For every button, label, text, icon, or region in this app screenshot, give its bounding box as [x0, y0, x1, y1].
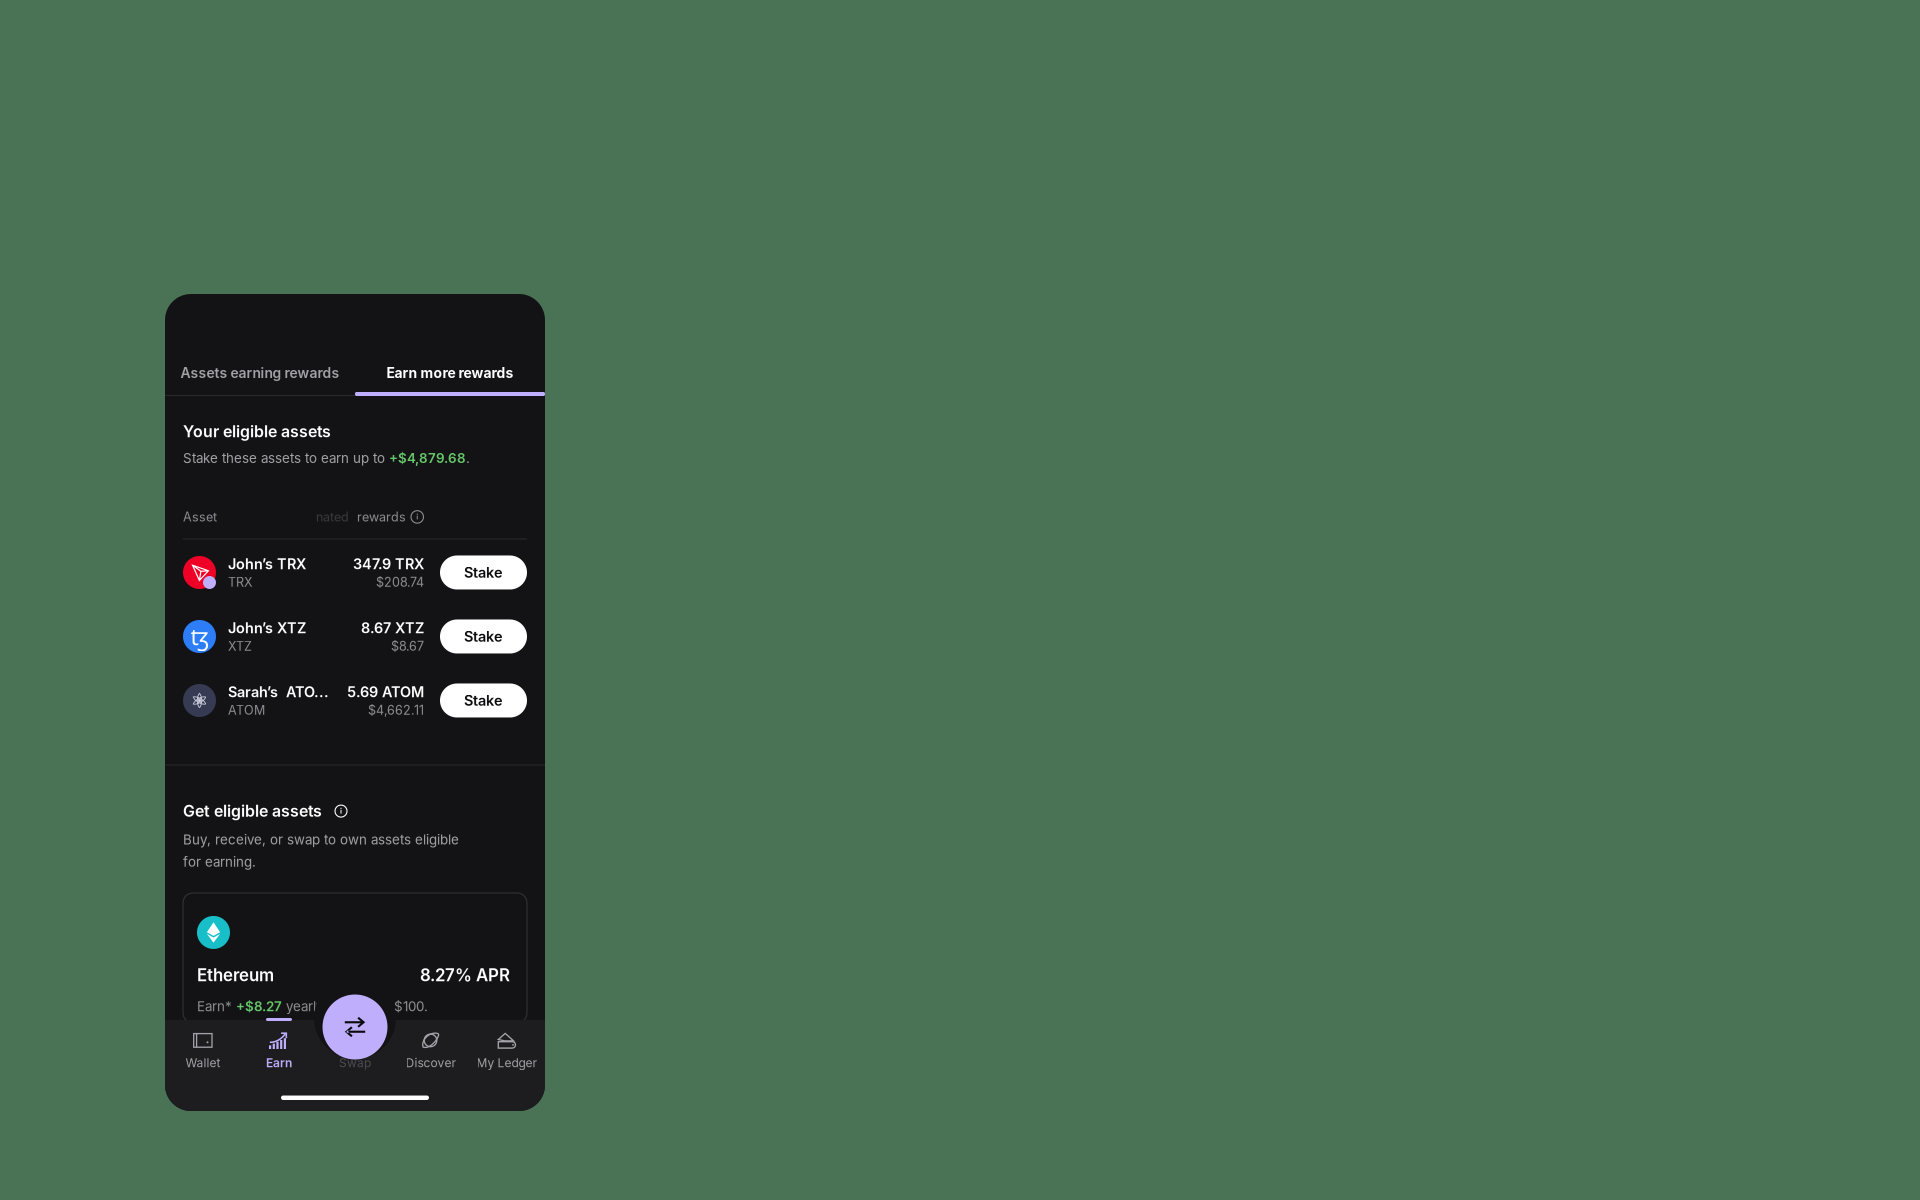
button[interactable]: Swap [317, 1020, 393, 1076]
staticText: for earning. [183, 854, 256, 870]
staticText: $4,662.11 [368, 703, 424, 718]
staticText: John’s XTZ [228, 619, 306, 637]
staticText: rewards [349, 509, 406, 524]
staticText: Sarah’s ATO... [228, 683, 329, 701]
staticText: 347.9 TRX [353, 555, 424, 573]
staticText: Swap [339, 1055, 371, 1070]
button[interactable]: Stake [440, 555, 527, 589]
staticText: Earn* [197, 998, 236, 1014]
button[interactable]: Stake [440, 619, 527, 653]
staticText: Wallet [185, 1055, 220, 1070]
staticText: Your eligible assets [183, 422, 331, 441]
staticText: Stake [464, 564, 503, 581]
staticText: Earn [266, 1055, 292, 1070]
staticText: Discover [405, 1055, 456, 1070]
staticText: $208.74 [376, 575, 424, 590]
staticText: nated [316, 509, 349, 524]
staticText: 8.67 XTZ [361, 619, 424, 637]
staticText: Asset [183, 509, 217, 524]
staticText: John’s TRX [228, 555, 306, 573]
staticText: Stake these assets to earn up to [183, 450, 389, 466]
staticText: $8.67 [391, 639, 424, 654]
button[interactable]: Wallet [165, 1020, 241, 1076]
button[interactable]: Earn [241, 1020, 317, 1076]
staticText: . [466, 450, 470, 466]
staticText: My Ledger [476, 1055, 537, 1070]
staticText: Stake [464, 692, 503, 709]
staticText: +$4,879.68 [389, 450, 466, 466]
staticText: XTZ [228, 639, 252, 654]
staticText: Earn more rewards [386, 365, 513, 381]
staticText: Ethereum [197, 965, 274, 985]
staticText: TRX [228, 575, 253, 590]
staticText: ꜩ [190, 621, 208, 652]
staticText: +$8.27 [236, 998, 282, 1014]
staticText: ATOM [228, 703, 265, 718]
button[interactable]: Stake [440, 683, 527, 717]
button[interactable]: Swap [322, 994, 387, 1059]
staticText: Stake [464, 628, 503, 645]
staticText: Get eligible assets [183, 801, 322, 821]
button[interactable]: Assets earning rewards [165, 350, 355, 396]
button[interactable]: Earn more rewards [355, 350, 545, 396]
staticText: yearly by staking $100. [282, 998, 428, 1014]
staticText: 8.27% APR [420, 965, 510, 985]
staticText: 5.69 ATOM [347, 683, 424, 701]
staticText: Assets earning rewards [180, 365, 339, 381]
button[interactable]: Discover [393, 1020, 469, 1076]
staticText: Buy, receive, or swap to own assets elig… [183, 832, 459, 848]
button[interactable]: My Ledger [469, 1020, 545, 1076]
